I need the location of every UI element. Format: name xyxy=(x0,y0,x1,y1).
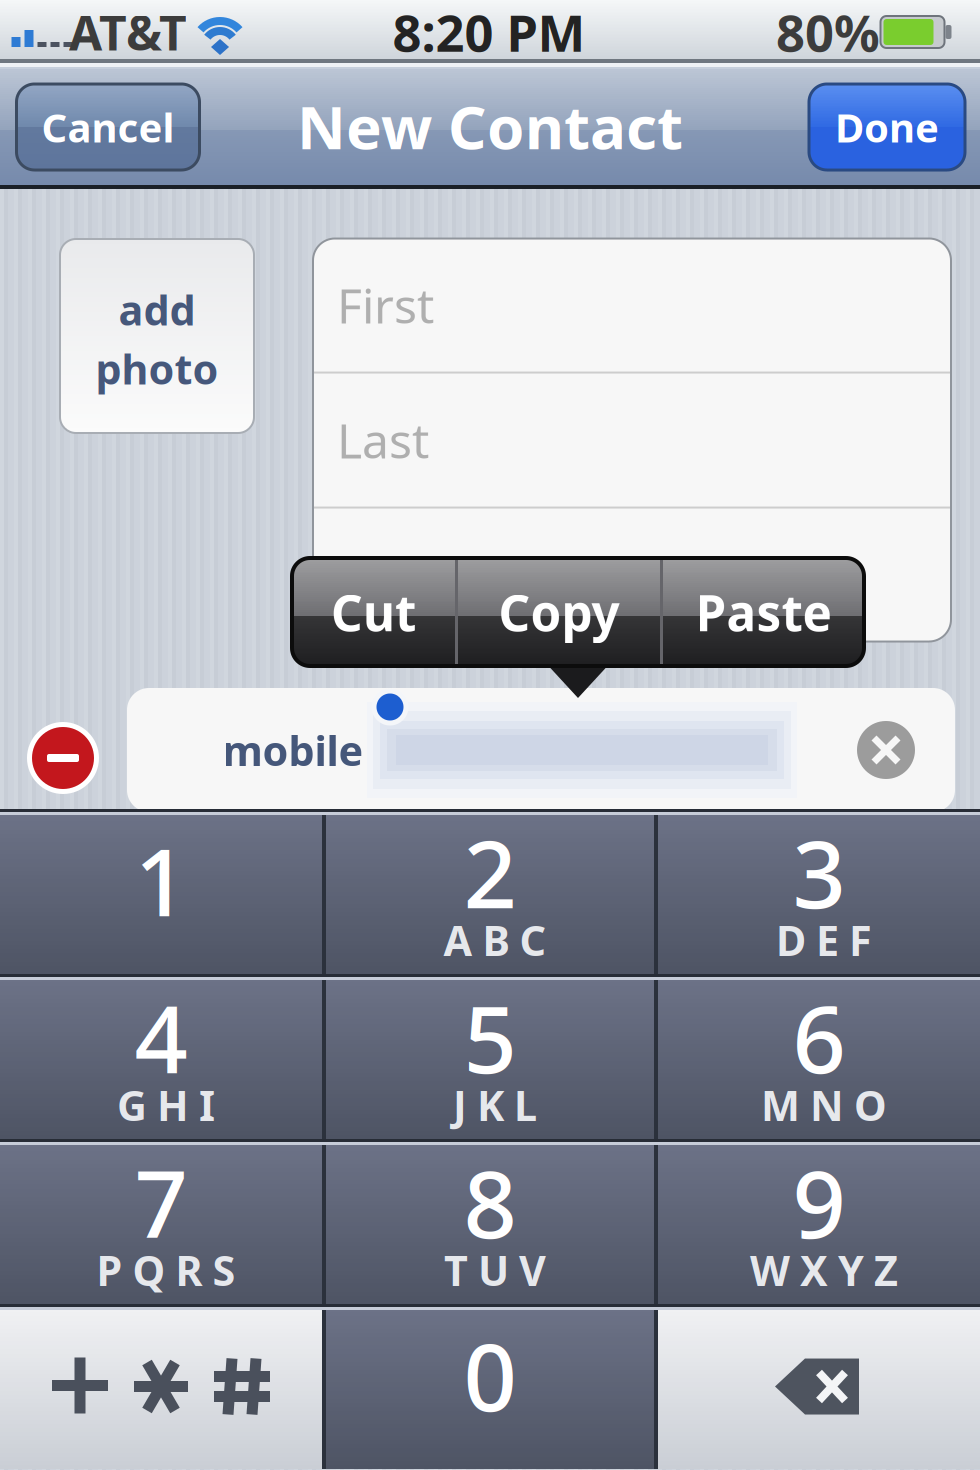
staticText: First xyxy=(337,273,434,337)
button[interactable]: Clear text xyxy=(857,721,915,779)
staticText: JKL xyxy=(453,1078,537,1132)
button[interactable]: 5 xyxy=(326,974,654,1139)
button[interactable]: Cut xyxy=(292,558,455,666)
button[interactable]: 9 xyxy=(658,1139,980,1304)
button[interactable]: 1 xyxy=(0,809,322,974)
button[interactable]: 7 xyxy=(0,1139,322,1304)
staticText: 1 xyxy=(134,818,187,942)
staticText: Copy xyxy=(498,579,619,645)
button[interactable]: 2 xyxy=(326,809,654,974)
staticText: DEF xyxy=(776,913,872,967)
staticText: Last xyxy=(337,408,429,472)
button[interactable]: Done xyxy=(809,84,965,170)
staticText: New Contact xyxy=(297,86,683,166)
staticText: ABC xyxy=(443,913,546,967)
button[interactable]: First xyxy=(313,238,951,371)
staticText: GHI xyxy=(117,1078,215,1132)
button[interactable]: Company xyxy=(313,508,951,641)
staticText: Cancel xyxy=(41,100,174,153)
button[interactable]: Delete xyxy=(658,1304,980,1469)
staticText: 0 xyxy=(463,1313,516,1437)
staticText: Cut xyxy=(331,579,416,645)
staticText: 8:20 PM xyxy=(392,0,585,66)
staticText: mobile xyxy=(222,723,363,777)
staticText: 2 xyxy=(463,810,516,934)
staticText: Done xyxy=(835,100,939,153)
staticText: MNO xyxy=(761,1078,887,1132)
staticText: TUV xyxy=(444,1243,546,1297)
button[interactable]: Cancel xyxy=(16,84,199,170)
staticText: 6 xyxy=(792,975,845,1099)
button[interactable]: 4 xyxy=(0,974,322,1139)
button[interactable]: Paste xyxy=(663,558,864,666)
button[interactable]: Last xyxy=(313,373,951,506)
staticText: 8 xyxy=(463,1140,516,1264)
button[interactable]: 6 xyxy=(658,974,980,1139)
staticText: 5 xyxy=(463,975,516,1099)
staticText: 3 xyxy=(792,810,845,934)
button[interactable]: Copy xyxy=(458,558,660,666)
staticText: add xyxy=(118,282,195,337)
staticText: 9 xyxy=(792,1140,845,1264)
staticText: 7 xyxy=(134,1140,187,1264)
button[interactable]: add xyxy=(60,239,254,433)
staticText: PQRS xyxy=(96,1243,235,1297)
button[interactable]: Plus, star, pound xyxy=(0,1304,322,1469)
staticText: 4 xyxy=(134,975,187,1099)
staticText: 80% xyxy=(776,0,880,66)
staticText: Company xyxy=(337,543,552,607)
button[interactable]: 8 xyxy=(326,1139,654,1304)
button[interactable]: 0 xyxy=(326,1304,654,1469)
staticText: AT&T xyxy=(69,0,187,64)
button[interactable]: 3 xyxy=(658,809,980,974)
button[interactable]: Delete phone number xyxy=(27,722,99,794)
staticText: Paste xyxy=(695,579,831,645)
staticText: WXYZ xyxy=(750,1243,898,1297)
staticText: photo xyxy=(95,341,218,396)
